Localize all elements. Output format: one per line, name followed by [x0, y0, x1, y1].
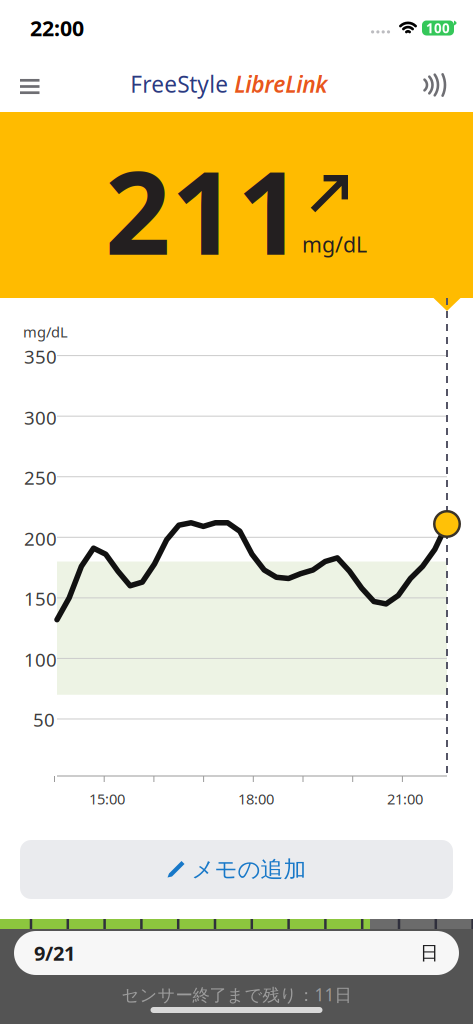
staticText: mg/dL [302, 230, 367, 258]
staticText: FreeStyle [130, 69, 228, 99]
staticText: 200 [24, 526, 57, 551]
staticText: 50 [33, 707, 55, 732]
staticText: 300 [24, 405, 57, 430]
staticText: センサー終了まで残り：11日 [121, 983, 351, 1006]
staticText: mg/dL [23, 322, 68, 341]
staticText: 100 [24, 647, 57, 672]
staticText: 18:00 [238, 789, 274, 808]
button[interactable]: Scan sensor [400, 56, 473, 112]
staticText: 250 [24, 465, 57, 490]
staticText: 22:00 [30, 14, 84, 42]
staticText: 15:00 [89, 789, 125, 808]
staticText: LibreLink [234, 69, 327, 99]
staticText: 100 [426, 19, 450, 37]
staticText: 9/21 [34, 940, 75, 966]
staticText: 21:00 [387, 789, 423, 808]
staticText: 211 [105, 134, 303, 286]
staticText: メモの追加 [191, 856, 306, 883]
staticText: 350 [24, 344, 57, 369]
staticText: 150 [24, 586, 57, 611]
button[interactable]: メモの追加 [20, 840, 453, 899]
button[interactable]: 9/21 [14, 931, 459, 975]
button[interactable]: Menu [0, 56, 57, 112]
staticText: 日 [420, 941, 439, 964]
